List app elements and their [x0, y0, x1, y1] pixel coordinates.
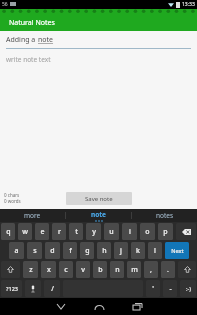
staticText: / — [51, 284, 54, 294]
staticText: e — [40, 227, 45, 237]
button[interactable]: Recent apps — [118, 298, 156, 315]
staticText: note — [91, 210, 106, 219]
staticText: s — [33, 246, 37, 256]
staticText: q — [6, 227, 11, 237]
button[interactable]: Backspace — [176, 223, 196, 240]
button[interactable]: u — [104, 223, 119, 240]
staticText: note — [38, 35, 54, 45]
button[interactable]: notes — [132, 209, 197, 222]
staticText: h — [102, 246, 107, 256]
staticText: Next — [171, 247, 184, 254]
staticText: u — [109, 227, 114, 237]
button[interactable]: Shift — [178, 261, 196, 278]
button[interactable]: , — [144, 261, 158, 278]
staticText: a — [14, 246, 19, 256]
button[interactable]: Adding a — [0, 35, 197, 49]
button[interactable]: w — [18, 223, 32, 240]
staticText: m — [131, 265, 138, 275]
button[interactable]: h — [97, 242, 111, 259]
button[interactable]: b — [93, 261, 107, 278]
button[interactable]: Hide keyboard — [42, 298, 80, 315]
button[interactable]: r — [52, 223, 66, 240]
button[interactable]: a — [9, 242, 24, 259]
button[interactable]: / — [44, 280, 60, 297]
staticText: 0 chars — [4, 192, 20, 198]
staticText: r — [58, 227, 61, 237]
button[interactable]: v — [76, 261, 90, 278]
button[interactable]: :-) — [180, 280, 196, 297]
button[interactable]: m — [127, 261, 141, 278]
button[interactable]: p — [158, 223, 173, 240]
button[interactable]: - — [163, 280, 177, 297]
button[interactable]: Shift — [1, 261, 20, 278]
staticText: v — [81, 265, 85, 275]
button[interactable]: note — [66, 209, 131, 222]
staticText: 56 — [2, 1, 8, 8]
staticText: k — [136, 246, 140, 256]
button[interactable]: g — [80, 242, 94, 259]
staticText: o — [145, 227, 150, 237]
staticText: w — [22, 227, 28, 237]
button[interactable]: Voice input — [25, 280, 41, 297]
staticText: l — [154, 246, 156, 256]
button[interactable]: z — [23, 261, 38, 278]
button[interactable]: l — [148, 242, 162, 259]
button[interactable]: more — [0, 209, 65, 222]
staticText: Save note — [85, 195, 113, 203]
button[interactable]: s — [27, 242, 42, 259]
button[interactable]: c — [59, 261, 73, 278]
staticText: notes — [156, 211, 174, 220]
button[interactable]: ' — [146, 280, 160, 297]
staticText: . — [167, 265, 169, 275]
staticText: Natural Notes — [9, 18, 55, 28]
staticText: c — [64, 265, 68, 275]
staticText: g — [85, 246, 90, 256]
button[interactable]: Next — [165, 242, 189, 259]
staticText: b — [98, 265, 103, 275]
staticText: more — [24, 211, 41, 220]
button[interactable]: x — [41, 261, 56, 278]
staticText: d — [50, 246, 55, 256]
staticText: j — [120, 246, 122, 256]
staticText: y — [92, 227, 96, 237]
staticText: f — [69, 246, 72, 256]
staticText: 0 words — [4, 198, 21, 204]
button[interactable]: ?123 — [1, 280, 22, 297]
staticText: 13:33 — [182, 1, 195, 8]
button[interactable]: q — [1, 223, 15, 240]
staticText: i — [129, 227, 131, 237]
button[interactable]: d — [45, 242, 60, 259]
button[interactable]: i — [122, 223, 137, 240]
button[interactable]: write note text — [0, 55, 197, 181]
staticText: Adding a — [6, 35, 38, 45]
staticText: n — [115, 265, 120, 275]
staticText: :-) — [186, 285, 191, 292]
staticText: z — [29, 265, 33, 275]
button[interactable]: . — [161, 261, 175, 278]
button[interactable]: f — [63, 242, 77, 259]
button[interactable]: j — [114, 242, 128, 259]
staticText: write note text — [6, 55, 51, 64]
button[interactable]: y — [86, 223, 101, 240]
button[interactable]: Save note — [66, 192, 132, 205]
staticText: p — [163, 227, 168, 237]
button[interactable]: t — [69, 223, 83, 240]
staticText: - — [169, 284, 172, 294]
button[interactable]: e — [35, 223, 49, 240]
staticText: , — [150, 265, 152, 275]
staticText: t — [75, 227, 78, 237]
button[interactable]: n — [110, 261, 124, 278]
staticText: x — [47, 265, 51, 275]
staticText: ?123 — [6, 285, 18, 292]
staticText: ' — [152, 284, 154, 294]
button[interactable]: Home — [80, 298, 118, 315]
button[interactable]: k — [131, 242, 145, 259]
button[interactable]: o — [140, 223, 155, 240]
